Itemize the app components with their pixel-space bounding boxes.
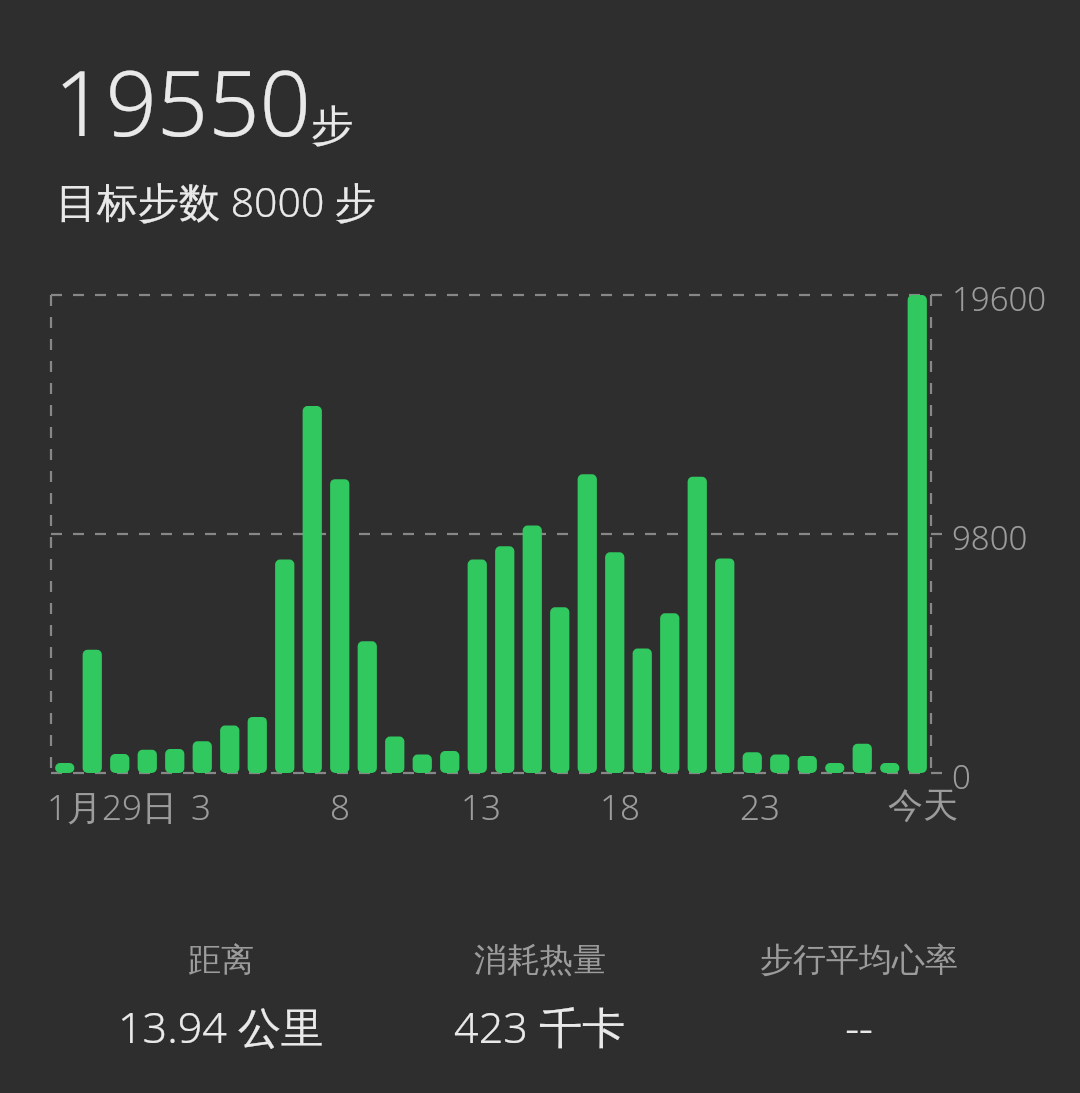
staticText: 19600 <box>952 276 1047 321</box>
staticText: 23 <box>740 783 780 831</box>
button[interactable]: 19550 <box>54 40 353 163</box>
staticText: 3 <box>191 783 211 831</box>
staticText: 1月29日 <box>47 783 177 831</box>
staticText: 13.94 公里 <box>118 997 324 1056</box>
staticText: 0 <box>952 754 971 799</box>
staticText: -- <box>845 997 873 1056</box>
staticText: 目标步数 8000 步 <box>56 173 376 229</box>
staticText: 8 <box>330 783 350 831</box>
button[interactable]: 消耗热量 <box>380 939 699 1056</box>
staticText: 18 <box>600 783 640 831</box>
staticText: 消耗热量 <box>474 939 606 981</box>
staticText: 19550 <box>54 40 311 163</box>
button[interactable]: 距离 <box>62 939 380 1056</box>
button[interactable]: 步行平均心率 <box>699 939 1018 1056</box>
staticText: 423 千卡 <box>454 997 625 1056</box>
staticText: 13 <box>461 783 501 831</box>
staticText: 步行平均心率 <box>760 939 958 981</box>
staticText: 9800 <box>952 515 1028 560</box>
staticText: 步 <box>311 100 353 153</box>
staticText: 距离 <box>188 939 254 981</box>
staticText: 今天 <box>888 783 958 827</box>
